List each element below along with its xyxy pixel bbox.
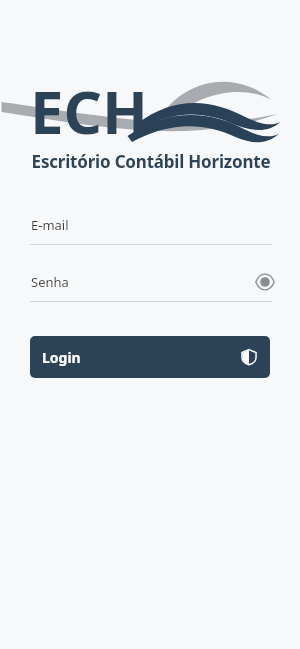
staticText: E-mail (31, 216, 69, 234)
staticText: Escritório Contábil Horizonte (30, 150, 272, 173)
button[interactable]: Login (30, 336, 270, 378)
button[interactable]: E-mail (0, 206, 300, 244)
staticText: Senha (31, 273, 69, 291)
button[interactable]: Senha (0, 263, 300, 301)
staticText: Login (42, 348, 81, 367)
staticText: ECH (30, 70, 149, 148)
button[interactable]: Mostrar senha (252, 269, 278, 295)
